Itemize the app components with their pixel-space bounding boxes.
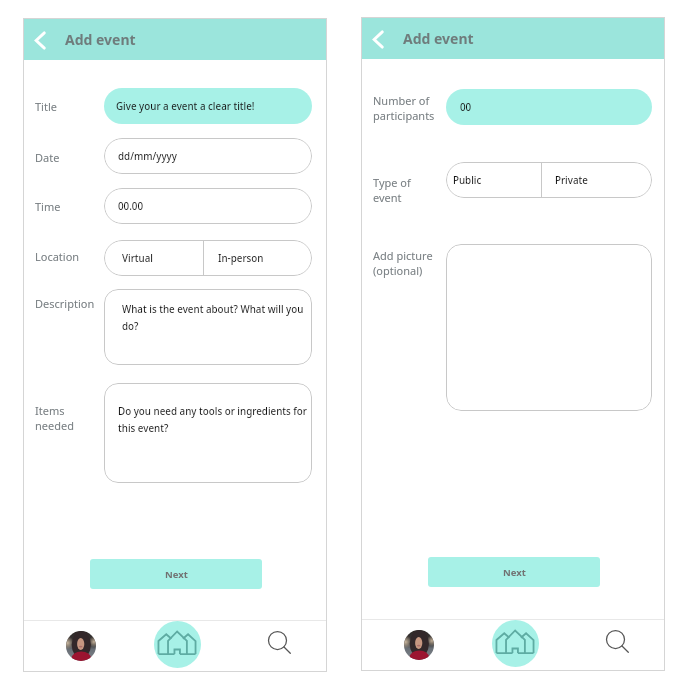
staticText: Add event bbox=[403, 29, 474, 48]
staticText: Give your a event a clear title! bbox=[116, 100, 255, 113]
staticText: Location bbox=[35, 249, 80, 264]
button[interactable]: dd/mm/yyyy bbox=[104, 138, 312, 174]
button[interactable]: Next bbox=[90, 559, 262, 589]
button[interactable]: 00 bbox=[446, 89, 652, 125]
button[interactable]: Home bbox=[463, 620, 564, 671]
button[interactable]: Home bbox=[125, 621, 226, 672]
staticText: In-person bbox=[218, 252, 264, 265]
staticText: Add event bbox=[65, 30, 136, 49]
button[interactable]: Search bbox=[226, 621, 327, 672]
staticText: Number of participants bbox=[373, 93, 435, 123]
staticText: Items needed bbox=[35, 403, 74, 433]
button[interactable]: Back bbox=[361, 20, 397, 56]
button[interactable]: Do you need any tools or ingredients for… bbox=[104, 383, 312, 483]
staticText: Type of event bbox=[373, 175, 411, 205]
staticText: 00.00 bbox=[118, 200, 144, 213]
button[interactable]: Back bbox=[23, 21, 59, 57]
staticText: Next bbox=[503, 566, 526, 579]
staticText: Public bbox=[453, 174, 482, 187]
staticText: Do you need any tools or ingredients for… bbox=[118, 405, 311, 435]
staticText: What is the event about? What will you d… bbox=[122, 303, 310, 333]
staticText: Description bbox=[35, 296, 95, 311]
button[interactable]: Public bbox=[446, 162, 541, 198]
button[interactable]: Search bbox=[564, 620, 665, 671]
staticText: Time bbox=[35, 199, 61, 214]
staticText: Private bbox=[555, 174, 588, 187]
button[interactable]: Next bbox=[428, 557, 600, 587]
staticText: Title bbox=[35, 99, 57, 114]
button[interactable]: Private bbox=[542, 162, 652, 198]
staticText: Add picture (optional) bbox=[373, 248, 433, 278]
staticText: Virtual bbox=[122, 252, 153, 265]
staticText: Next bbox=[165, 568, 188, 581]
button[interactable]: What is the event about? What will you d… bbox=[104, 289, 312, 365]
staticText: dd/mm/yyyy bbox=[118, 150, 177, 163]
button[interactable] bbox=[446, 244, 652, 411]
button[interactable]: Profile bbox=[23, 621, 125, 672]
button[interactable]: Profile bbox=[361, 620, 463, 671]
button[interactable]: Virtual bbox=[104, 240, 203, 276]
staticText: Date bbox=[35, 150, 60, 165]
staticText: 00 bbox=[460, 101, 472, 114]
button[interactable]: In-person bbox=[204, 240, 312, 276]
button[interactable]: 00.00 bbox=[104, 188, 312, 224]
button[interactable]: Give your a event a clear title! bbox=[104, 88, 312, 124]
